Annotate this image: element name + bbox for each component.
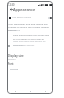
staticText: Your wallpaper and app theme will change… — [8, 22, 51, 31]
staticText: Font — [8, 62, 14, 66]
button[interactable]: Navigate up — [8, 6, 15, 13]
button[interactable]: Home — [29, 90, 31, 92]
staticText: Display size — [8, 54, 24, 58]
staticText: Appearance — [13, 7, 36, 12]
staticText: Dark theme keeps the screen dim so it is… — [13, 34, 51, 40]
button[interactable]: Schedule — [8, 43, 50, 48]
staticText: 12:30 — [8, 3, 15, 6]
staticText: Schedule — [13, 44, 23, 47]
staticText: night and helps save battery on most mob… — [13, 40, 51, 46]
button[interactable]: Back — [14, 90, 16, 92]
staticText: Learn more — [8, 29, 20, 32]
staticText: Default — [8, 58, 16, 61]
button[interactable] — [10, 68, 30, 71]
staticText: Use device theme — [12, 16, 32, 19]
button[interactable]: Use device theme — [9, 15, 52, 20]
button[interactable]: Recent apps — [44, 90, 46, 92]
